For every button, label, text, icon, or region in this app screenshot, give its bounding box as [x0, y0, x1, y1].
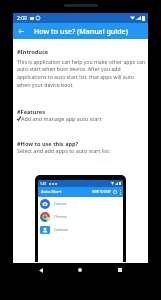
staticText: Add and manage app auto start — [21, 115, 102, 122]
staticText: HOW TO USE? — [92, 190, 111, 194]
staticText: 1:41 — [40, 182, 47, 186]
button[interactable]: Chrome — [38, 210, 123, 223]
button[interactable]: Navigate up — [13, 23, 30, 39]
staticText: 2:09 — [17, 15, 27, 22]
button[interactable]: Back — [31, 263, 51, 277]
staticText: Contacts — [54, 227, 68, 232]
staticText: How to use? (Manual guide) — [34, 26, 128, 36]
button[interactable]: Contacts — [38, 223, 123, 236]
button[interactable]: Recent apps — [110, 263, 130, 277]
staticText: This is application can help you make ot… — [17, 58, 148, 89]
staticText: Select and add apps to auto start list. — [17, 147, 111, 154]
staticText: Chrome — [54, 214, 67, 219]
staticText: Camera — [54, 201, 67, 206]
staticText: #Introduce — [17, 48, 49, 56]
staticText: #Features — [17, 108, 45, 116]
button[interactable]: Home — [70, 263, 90, 277]
staticText: #How to use this app? — [17, 140, 79, 148]
button[interactable]: Camera — [38, 197, 123, 210]
staticText: Auto Start — [41, 189, 62, 195]
